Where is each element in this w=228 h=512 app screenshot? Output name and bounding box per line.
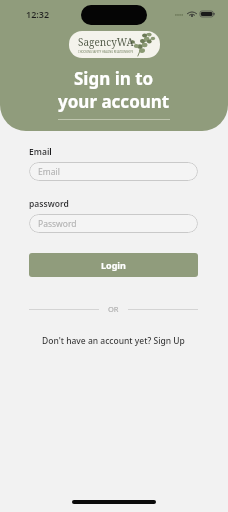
staticText: Sign in to [74, 67, 154, 90]
staticText: Login [101, 259, 126, 271]
button[interactable]: Email [29, 162, 198, 181]
staticText: Email [29, 146, 52, 158]
staticText: password [29, 198, 69, 210]
staticText: Password [38, 218, 77, 230]
button[interactable]: Don't have an account yet? Sign Up [29, 335, 198, 347]
button[interactable]: Login [29, 253, 198, 277]
button[interactable]: Password [29, 214, 198, 233]
staticText: 12:32 [26, 8, 50, 20]
other: SagencyWA logo [69, 31, 160, 58]
staticText: SagencyWA [78, 35, 134, 49]
staticText: Don't have an account yet? Sign Up [42, 335, 185, 347]
staticText: your account [58, 90, 170, 113]
staticText: Email [38, 166, 60, 178]
staticText: CHOOSING SAFETY HEALING RELATIONSHIPS [78, 50, 134, 54]
staticText: OR [108, 304, 119, 314]
